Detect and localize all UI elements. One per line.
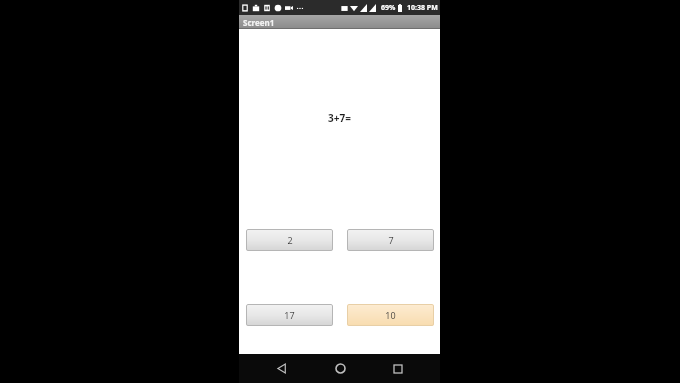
button[interactable]: 2: [246, 229, 333, 251]
button[interactable]: 17: [246, 304, 333, 326]
staticText: 3+7=: [328, 111, 351, 125]
button[interactable]: 7: [347, 229, 434, 251]
button[interactable]: Recent apps: [381, 354, 415, 383]
staticText: Screen1: [243, 17, 275, 28]
staticText: 2: [287, 234, 293, 246]
button[interactable]: Home: [323, 354, 357, 383]
button[interactable]: Back: [264, 354, 298, 383]
button[interactable]: 10: [347, 304, 434, 326]
staticText: 10: [385, 309, 396, 321]
staticText: 69%: [381, 3, 396, 13]
staticText: 17: [284, 309, 295, 321]
staticText: 10:38 PM: [407, 3, 438, 13]
staticText: 7: [388, 234, 394, 246]
